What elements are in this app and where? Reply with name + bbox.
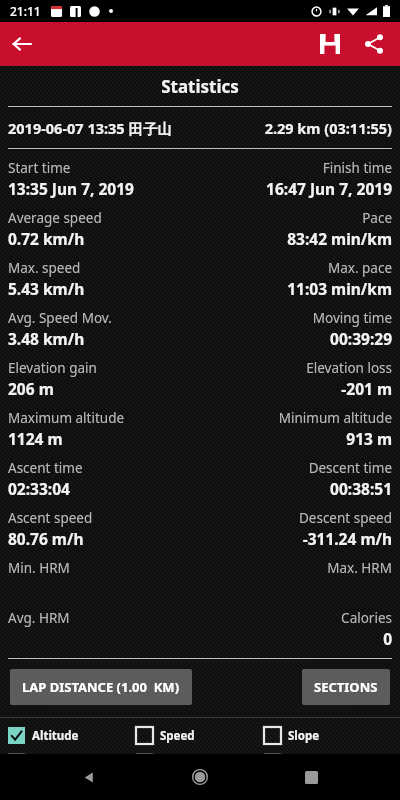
staticText: 16:47 Jun 7, 2019 [200, 178, 392, 199]
staticText: Max. speed [8, 259, 200, 277]
staticText: 5.43 km/h [8, 278, 200, 299]
staticText [8, 578, 200, 599]
staticText: 11:03 min/km [200, 278, 392, 299]
staticText: Max. pace [200, 259, 392, 277]
staticText: Statistics [0, 75, 400, 98]
staticText: Descent speed [200, 509, 392, 527]
staticText: LAP DISTANCE (1.00 KM) [22, 678, 180, 696]
button[interactable]: Back [0, 22, 44, 66]
staticText: Moving time [200, 309, 392, 327]
button[interactable]: Share [352, 22, 396, 66]
staticText: 2019-06-07 13:35 田子山 [8, 118, 264, 138]
button[interactable]: Save [308, 22, 352, 66]
staticText: Elevation loss [200, 359, 392, 377]
staticText: Avg. Speed Mov. [8, 309, 200, 327]
button[interactable]: Speed [136, 727, 264, 744]
staticText: Speed [160, 728, 195, 744]
staticText: 83:42 min/km [200, 228, 392, 249]
button[interactable]: Altitude [8, 727, 136, 744]
staticText: -311.24 m/h [200, 528, 392, 549]
staticText: 00:39:29 [200, 328, 392, 349]
button[interactable]: Slope [264, 727, 392, 744]
staticText: 02:33:04 [8, 478, 200, 499]
staticText: 00:38:51 [200, 478, 392, 499]
staticText: 206 m [8, 378, 200, 399]
staticText: Average speed [8, 209, 200, 227]
staticText: Ascent time [8, 459, 200, 477]
staticText: Start time [8, 159, 200, 177]
staticText: 0 [200, 628, 392, 649]
staticText: Max. HRM [200, 559, 392, 577]
button[interactable]: SECTIONS [302, 669, 390, 705]
staticText: 80.76 m/h [8, 528, 200, 549]
button[interactable]: Back [67, 755, 111, 799]
staticText: SECTIONS [314, 678, 378, 696]
staticText: Elevation gain [8, 359, 200, 377]
staticText: 2.29 km (03:11:55) [264, 118, 392, 138]
staticText: Finish time [200, 159, 392, 177]
staticText: 913 m [200, 428, 392, 449]
staticText: Minimum altitude [200, 409, 392, 427]
staticText: Min. HRM [8, 559, 200, 577]
button[interactable]: Home [178, 755, 222, 799]
staticText: 0.72 km/h [8, 228, 200, 249]
staticText: 3.48 km/h [8, 328, 200, 349]
staticText: 13:35 Jun 7, 2019 [8, 178, 200, 199]
staticText: Calories [200, 609, 392, 627]
button[interactable]: LAP DISTANCE (1.00 KM) [10, 669, 192, 705]
staticText: Slope [288, 728, 320, 744]
staticText: Ascent speed [8, 509, 200, 527]
button[interactable]: Recent apps [289, 755, 333, 799]
staticText: 21:11 [10, 3, 41, 19]
staticText [200, 578, 392, 599]
staticText: Maximum altitude [8, 409, 200, 427]
staticText: Altitude [32, 728, 79, 744]
staticText: Pace [200, 209, 392, 227]
staticText: Avg. HRM [8, 609, 200, 627]
staticText: Descent time [200, 459, 392, 477]
staticText: 1124 m [8, 428, 200, 449]
staticText [8, 628, 200, 649]
staticText: -201 m [200, 378, 392, 399]
